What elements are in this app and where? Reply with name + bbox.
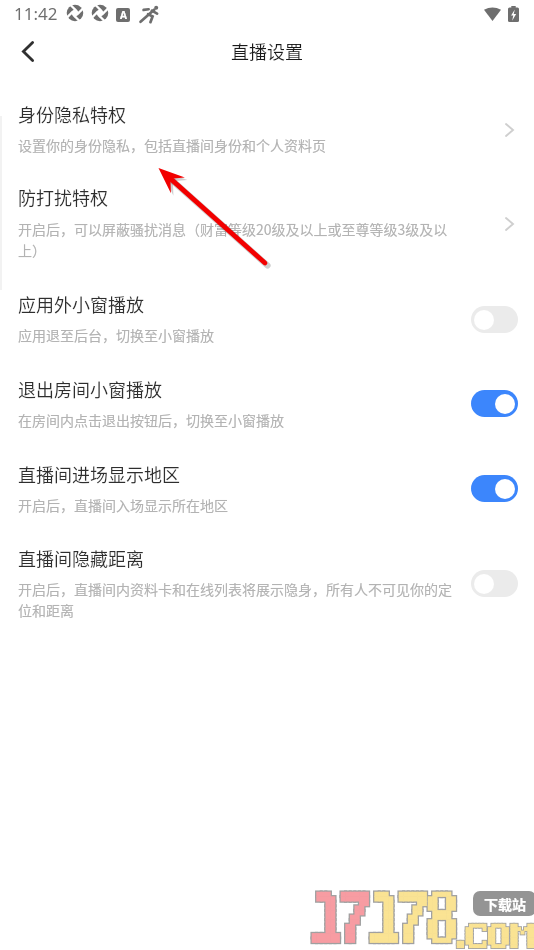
staticText: 直播设置 bbox=[0, 38, 534, 64]
button[interactable]: Switch on bbox=[471, 475, 518, 502]
staticText: 应用外小窗播放 bbox=[18, 291, 144, 317]
staticText: 退出房间小窗播放 bbox=[18, 376, 162, 402]
button[interactable]: 直播间进场显示地区 bbox=[0, 441, 534, 525]
staticText: 下载站 bbox=[484, 894, 526, 914]
button[interactable]: Switch off bbox=[471, 570, 518, 597]
staticText: 直播间进场显示地区 bbox=[18, 461, 180, 487]
button[interactable]: Switch on bbox=[471, 390, 518, 417]
staticText: 开启后，可以屏蔽骚扰消息（财富等级20级及以上或至尊等级3级及以上） bbox=[18, 219, 460, 260]
staticText: 身份隐私特权 bbox=[18, 101, 126, 127]
staticText: 设置你的身份隐私，包括直播间身份和个人资料页 bbox=[18, 135, 460, 155]
staticText: 在房间内点击退出按钮后，切换至小窗播放 bbox=[18, 410, 460, 430]
button[interactable]: Switch off bbox=[471, 306, 518, 333]
button[interactable]: 直播间隐藏距离 bbox=[0, 525, 534, 632]
button[interactable]: 防打扰特权 bbox=[0, 164, 534, 271]
staticText: 开启后，直播间内资料卡和在线列表将展示隐身，所有人不可见你的定位和距离 bbox=[18, 579, 460, 620]
button[interactable]: 应用外小窗播放 bbox=[0, 271, 534, 356]
staticText: 应用退至后台，切换至小窗播放 bbox=[18, 325, 460, 345]
button[interactable]: 退出房间小窗播放 bbox=[0, 356, 534, 441]
staticText: 直播间隐藏距离 bbox=[18, 545, 144, 571]
staticText: A bbox=[120, 8, 127, 22]
button[interactable]: Back bbox=[5, 29, 49, 73]
staticText: 11:42 bbox=[14, 2, 58, 25]
staticText: 开启后，直播间入场显示所在地区 bbox=[18, 495, 460, 515]
button[interactable]: 身份隐私特权 bbox=[0, 81, 534, 164]
staticText: 防打扰特权 bbox=[18, 184, 108, 210]
